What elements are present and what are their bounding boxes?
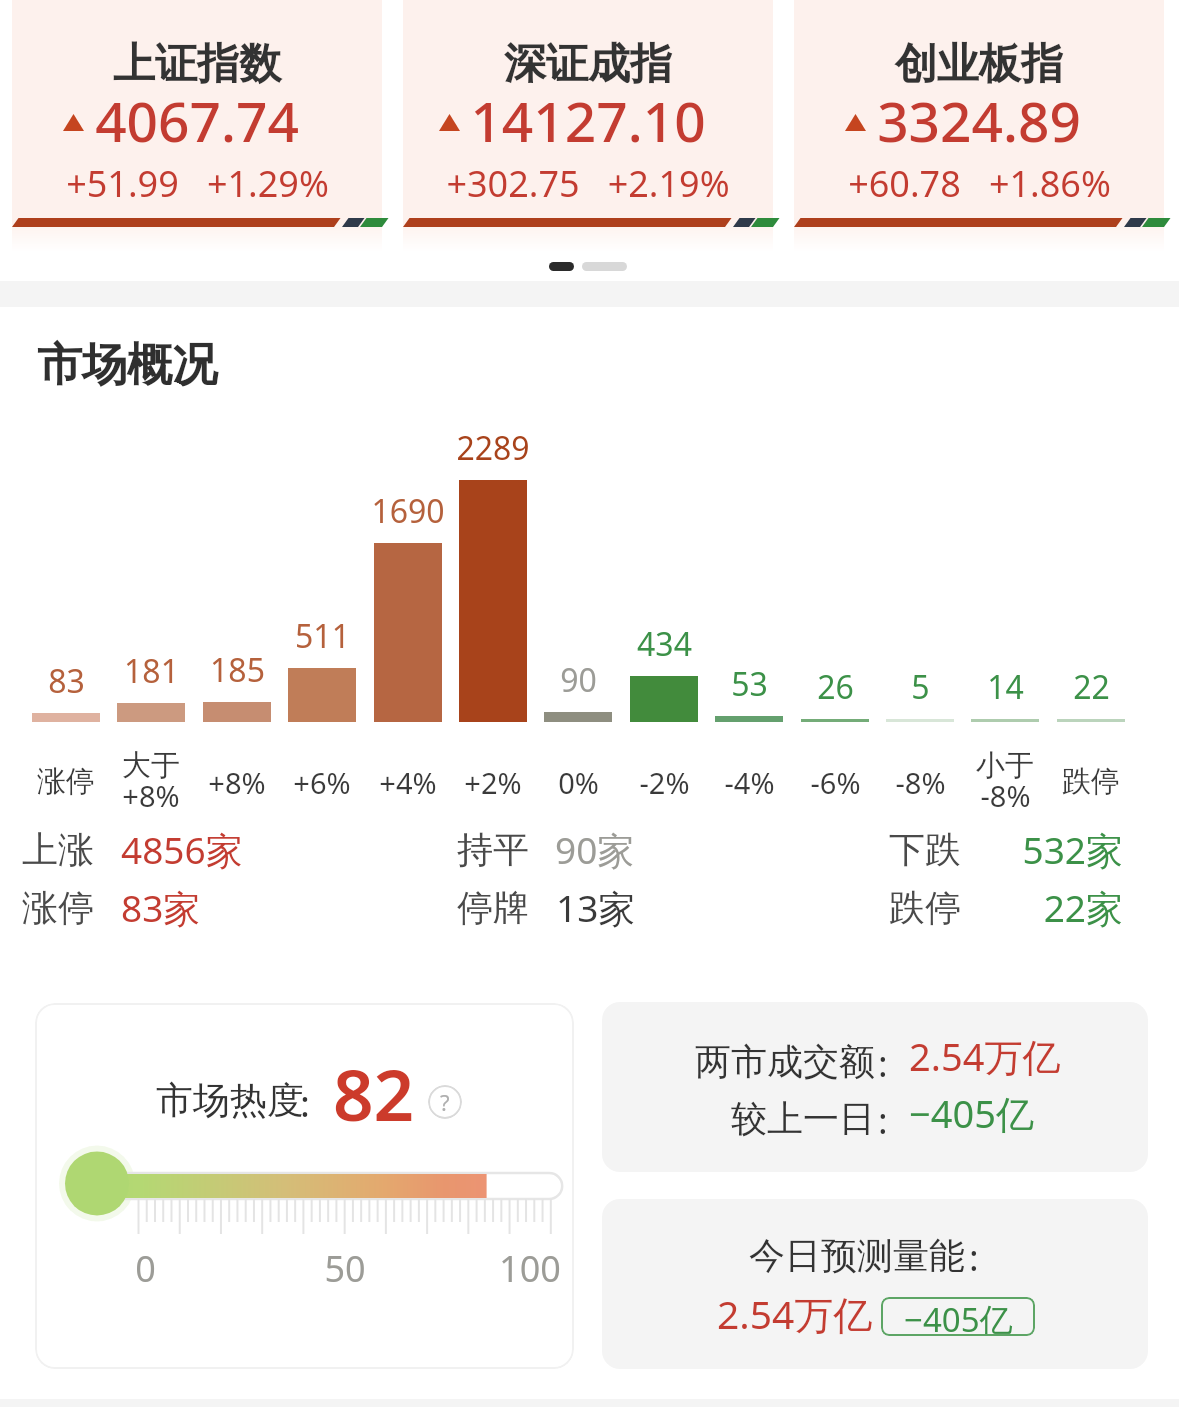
staticText: : xyxy=(969,1233,979,1282)
staticText: 53 xyxy=(731,662,768,706)
button[interactable] xyxy=(889,879,1123,931)
button[interactable]: +6% 511 xyxy=(280,420,364,810)
staticText: 13家 xyxy=(556,882,636,933)
staticText: 100 xyxy=(499,1244,561,1293)
staticText: : xyxy=(878,1039,888,1088)
button[interactable]: 跌停 22 xyxy=(1049,420,1133,810)
button[interactable] xyxy=(35,1003,574,1369)
button[interactable]: +4% 1690 xyxy=(366,420,450,810)
button[interactable]: 第二页 xyxy=(582,262,627,271)
button[interactable]: -2% 434 xyxy=(622,420,706,810)
staticText: 今日预测量能 xyxy=(749,1233,965,1278)
button[interactable]: 小于-8% 14 xyxy=(963,420,1047,810)
staticText: 深证成指 xyxy=(504,38,672,91)
button[interactable]: 0% 90 xyxy=(536,420,620,810)
button[interactable] xyxy=(794,0,1164,252)
staticText: : xyxy=(878,1096,888,1145)
staticText: 较上一日 xyxy=(731,1096,875,1141)
button[interactable]: +2% 2289 xyxy=(451,420,535,810)
button[interactable] xyxy=(22,879,351,931)
staticText: -8% xyxy=(980,776,1031,815)
button[interactable] xyxy=(403,0,773,252)
button[interactable]: -4% 53 xyxy=(707,420,791,810)
staticText: 0% xyxy=(558,763,599,802)
staticText: 2.54万亿 xyxy=(909,1030,1061,1082)
button[interactable] xyxy=(457,821,785,873)
staticText: 50 xyxy=(324,1244,366,1293)
button[interactable]: 第一页 xyxy=(549,262,574,271)
staticText: +6% xyxy=(293,763,351,802)
staticText: -8% xyxy=(895,763,946,802)
staticText: +60.78 +1.86% xyxy=(848,159,1111,208)
staticText: -4% xyxy=(724,763,775,802)
staticText: +302.75 +2.19% xyxy=(446,159,730,208)
staticText: 上证指数 xyxy=(113,38,281,91)
staticText: 22家 xyxy=(1043,882,1123,933)
button[interactable]: -8% 5 xyxy=(878,420,962,810)
staticText: 5 xyxy=(911,665,930,709)
staticText: −405亿 xyxy=(904,1297,1013,1336)
staticText: +2% xyxy=(464,763,522,802)
staticText: ? xyxy=(440,1087,450,1117)
staticText: 511 xyxy=(295,614,350,658)
staticText: 90 xyxy=(560,658,597,702)
button[interactable]: 大于+8% 181 xyxy=(109,420,193,810)
staticText: 3324.89 xyxy=(877,83,1081,158)
staticText: 市场热度 xyxy=(156,1077,304,1124)
staticText: +4% xyxy=(379,763,437,802)
staticText: 82 xyxy=(333,1045,415,1142)
staticText: 下跌 xyxy=(889,827,961,872)
button[interactable] xyxy=(457,879,786,931)
button[interactable]: −405亿 xyxy=(881,1297,1035,1336)
staticText: 跌停 xyxy=(889,885,961,930)
button[interactable] xyxy=(889,821,1123,873)
staticText: 83 xyxy=(48,659,85,703)
staticText: 2.54万亿 xyxy=(717,1287,873,1340)
staticText: 83家 xyxy=(121,882,201,933)
staticText: 2289 xyxy=(456,426,530,470)
staticText: 0 xyxy=(135,1244,156,1293)
button[interactable] xyxy=(22,821,351,873)
staticText: 涨停 xyxy=(37,763,95,800)
staticText: +8% xyxy=(208,763,266,802)
staticText: 434 xyxy=(637,622,692,666)
button[interactable] xyxy=(12,0,382,252)
button[interactable]: -6% 26 xyxy=(793,420,877,810)
staticText: 涨停 xyxy=(22,885,94,930)
staticText: 小于 xyxy=(976,747,1034,784)
staticText: 185 xyxy=(210,648,265,692)
staticText: 90家 xyxy=(555,824,635,875)
staticText: -6% xyxy=(810,763,861,802)
staticText: 上涨 xyxy=(22,827,94,872)
staticText: +51.99 +1.29% xyxy=(66,159,329,208)
staticText: +8% xyxy=(122,776,180,815)
staticText: 181 xyxy=(124,649,179,693)
staticText: 532家 xyxy=(1022,824,1123,875)
button[interactable]: 涨停 83 xyxy=(24,420,108,810)
staticText: 26 xyxy=(817,665,854,709)
staticText: 4067.74 xyxy=(95,83,299,158)
staticText: 22 xyxy=(1073,665,1110,709)
button[interactable]: +8% 185 xyxy=(195,420,279,810)
staticText: 14 xyxy=(987,665,1024,709)
staticText: 大于 xyxy=(122,747,180,784)
button[interactable] xyxy=(602,1199,1148,1369)
button[interactable]: 市场热度说明 xyxy=(428,1085,462,1119)
staticText: 停牌 xyxy=(457,885,529,930)
staticText: 创业板指 xyxy=(895,38,1063,91)
staticText: 1690 xyxy=(371,489,445,533)
staticText: −405亿 xyxy=(909,1087,1034,1139)
button[interactable] xyxy=(602,1002,1148,1172)
staticText: 两市成交额 xyxy=(695,1039,875,1084)
staticText: 持平 xyxy=(457,827,529,872)
staticText: 14127.10 xyxy=(470,83,706,158)
staticText: : xyxy=(300,1077,310,1127)
staticText: 跌停 xyxy=(1062,763,1120,800)
staticText: 4856家 xyxy=(121,824,243,875)
staticText: 市场概况 xyxy=(37,337,217,394)
staticText: -2% xyxy=(639,763,690,802)
